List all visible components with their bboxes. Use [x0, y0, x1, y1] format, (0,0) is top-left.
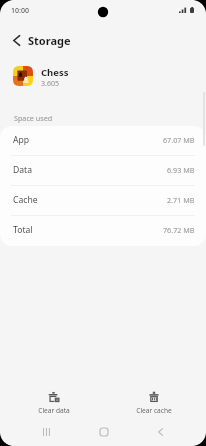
staticText: 76.72 MB — [163, 225, 195, 235]
button[interactable]: Home — [75, 418, 132, 446]
staticText: Chess — [41, 66, 69, 79]
staticText: Space used — [14, 113, 53, 123]
staticText: 3.605 — [41, 79, 59, 89]
button[interactable]: Recent apps — [18, 418, 75, 446]
staticText: 2.71 MB — [167, 195, 195, 205]
button[interactable]: Back — [132, 418, 189, 446]
button[interactable]: Cache — [0, 186, 206, 216]
button[interactable]: Clear data — [0, 386, 103, 418]
staticText: Cache — [13, 194, 38, 206]
staticText: 67.07 MB — [163, 135, 195, 145]
staticText: 6.93 MB — [167, 165, 195, 175]
button[interactable]: Navigate up — [2, 26, 31, 55]
staticText: Total — [13, 224, 33, 236]
button[interactable]: Clear cache — [103, 386, 206, 418]
staticText: App — [13, 134, 30, 146]
staticText: Storage — [28, 33, 71, 48]
button[interactable]: App — [0, 126, 206, 156]
staticText: Clear cache — [136, 406, 172, 415]
staticText: 10:00 — [11, 6, 29, 16]
button[interactable]: Data — [0, 156, 206, 186]
button[interactable]: Total — [0, 216, 206, 246]
staticText: Clear data — [38, 406, 70, 415]
staticText: Data — [13, 164, 33, 176]
